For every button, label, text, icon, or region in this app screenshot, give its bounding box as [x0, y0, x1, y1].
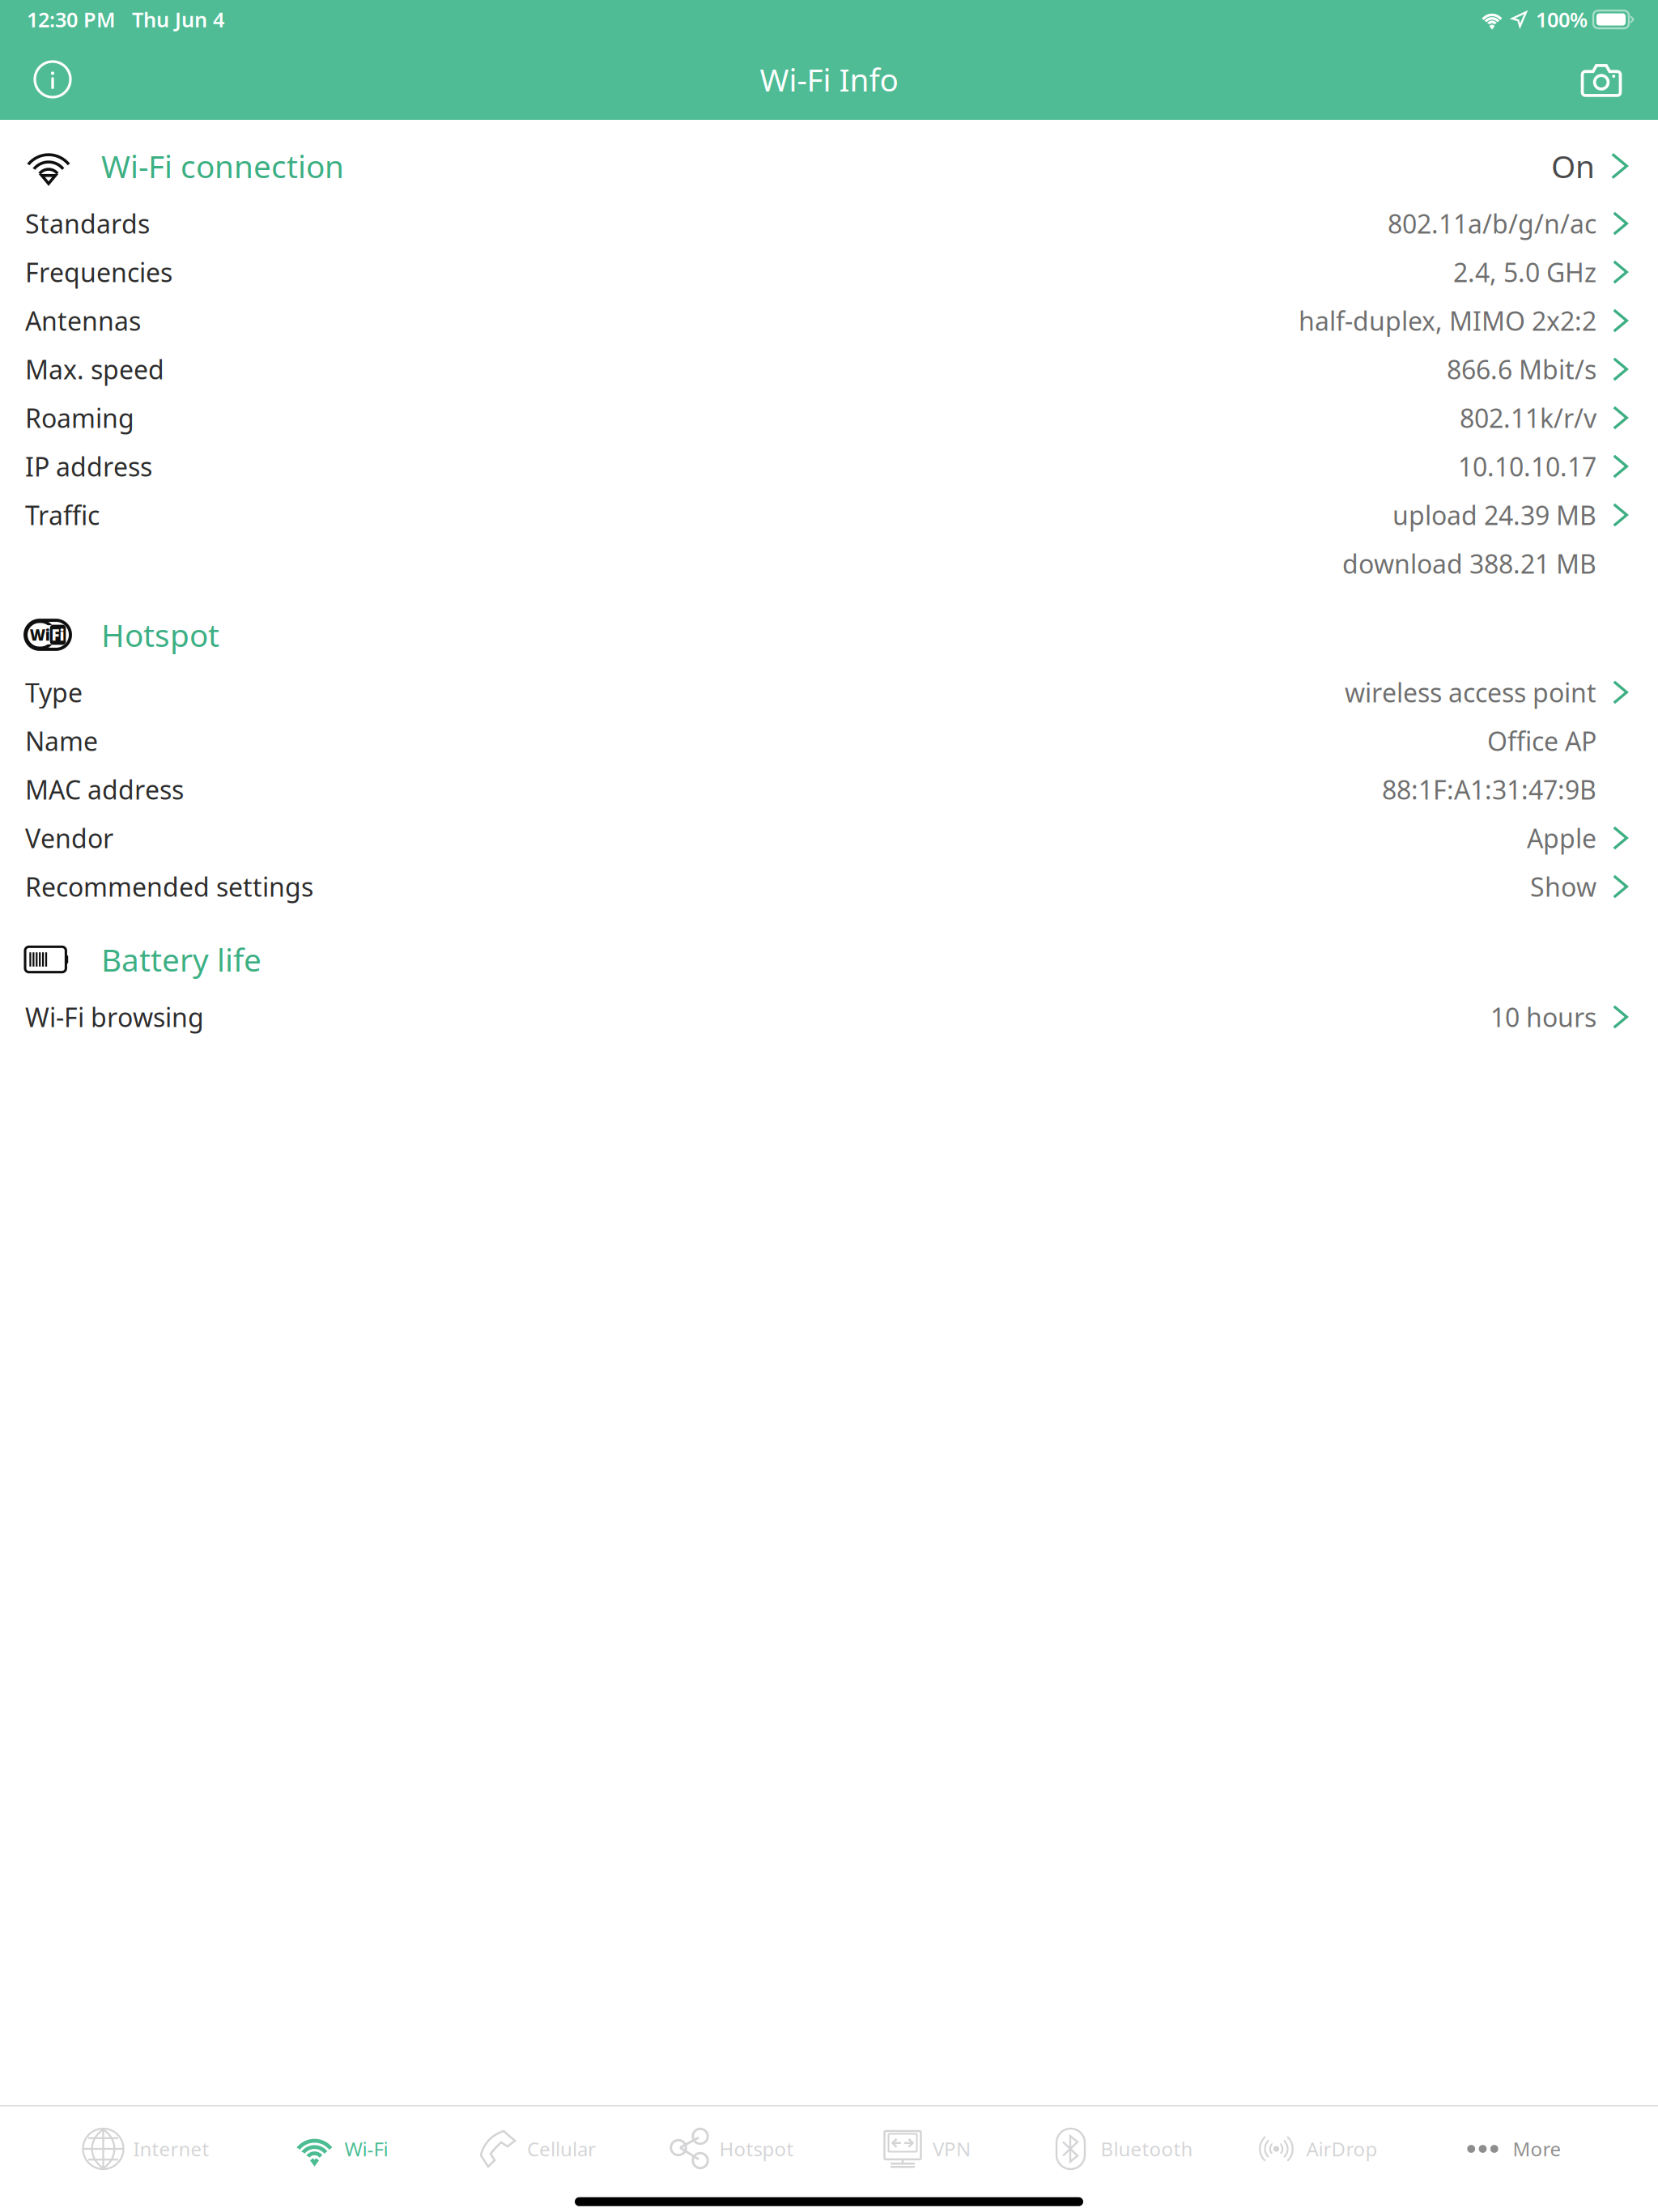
button[interactable]: Hotspot — [634, 2106, 829, 2191]
button[interactable]: VPN — [829, 2106, 1024, 2191]
staticText: Hotspot — [101, 614, 219, 656]
button[interactable]: Roaming — [0, 393, 1658, 442]
staticText: Frequencies — [25, 255, 172, 289]
button[interactable]: Antennas — [0, 296, 1658, 345]
staticText: 88:1F:A1:31:47:9B — [1382, 772, 1596, 807]
staticText: MAC address — [25, 772, 184, 807]
button[interactable]: More — [1414, 2106, 1609, 2191]
staticText: On — [1551, 145, 1595, 187]
staticText: Cellular — [527, 2136, 596, 2162]
staticText: AirDrop — [1306, 2136, 1377, 2162]
button[interactable]: Cellular — [439, 2106, 634, 2191]
staticText: Name — [25, 724, 98, 758]
button[interactable]: MAC address — [0, 765, 1658, 814]
staticText: 802.11a/b/g/n/ac — [1388, 206, 1596, 241]
button[interactable]: Max. speed — [0, 345, 1658, 393]
button[interactable]: Recommended settings — [0, 862, 1658, 911]
staticText: Wi — [30, 625, 50, 645]
staticText: Traffic — [25, 498, 100, 532]
staticText: 10.10.10.17 — [1458, 449, 1596, 484]
staticText: Battery life — [101, 939, 261, 980]
staticText: Type — [25, 675, 83, 710]
staticText: 866.6 Mbit/s — [1447, 352, 1596, 386]
staticText: Fi — [51, 625, 64, 645]
button[interactable]: Vendor — [0, 814, 1658, 862]
button[interactable]: AirDrop — [1219, 2106, 1414, 2191]
staticText: Max. speed — [25, 352, 164, 386]
button[interactable]: Traffic — [0, 491, 1658, 588]
staticText: upload 24.39 MB — [1392, 498, 1596, 532]
staticText: Office AP — [1487, 724, 1596, 758]
staticText: Recommended settings — [25, 869, 313, 904]
staticText: Wi-Fi Info — [760, 59, 898, 100]
button[interactable]: IP address — [0, 442, 1658, 491]
button[interactable]: Wi-Fi — [244, 2106, 439, 2191]
staticText: 10 hours — [1490, 1000, 1596, 1034]
staticText: VPN — [933, 2136, 971, 2162]
button[interactable]: Type — [0, 668, 1658, 717]
staticText: half-duplex, MIMO 2x2:2 — [1299, 303, 1596, 338]
button[interactable]: Bluetooth — [1024, 2106, 1219, 2191]
staticText: Internet — [133, 2136, 209, 2162]
button[interactable]: Standards — [0, 199, 1658, 248]
staticText: More — [1513, 2136, 1561, 2162]
button[interactable]: Internet — [49, 2106, 244, 2191]
staticText: 12:30 PM — [27, 6, 116, 33]
button[interactable]: Camera — [1556, 39, 1647, 120]
button[interactable]: Info — [7, 39, 98, 120]
staticText: IP address — [25, 449, 152, 484]
staticText: Antennas — [25, 303, 141, 338]
staticText: 2.4, 5.0 GHz — [1453, 255, 1596, 289]
staticText: 802.11k/r/v — [1460, 401, 1596, 435]
staticText: Show — [1530, 869, 1596, 904]
staticText: Wi-Fi connection — [101, 145, 344, 187]
button[interactable]: Wi-Fi browsing — [0, 993, 1658, 1041]
staticText: wireless access point — [1345, 675, 1596, 710]
staticText: Standards — [25, 206, 150, 241]
staticText: Wi-Fi — [344, 2136, 388, 2162]
staticText: 100% — [1536, 6, 1588, 33]
staticText: Hotspot — [719, 2136, 794, 2162]
staticText: Thu Jun 4 — [132, 6, 224, 33]
staticText: Apple — [1527, 821, 1596, 855]
staticText: Bluetooth — [1101, 2136, 1193, 2162]
button[interactable]: Name — [0, 717, 1658, 765]
staticText: Vendor — [25, 821, 113, 855]
staticText: download 388.21 MB — [1342, 546, 1596, 581]
staticText: Wi-Fi browsing — [25, 1000, 204, 1034]
staticText: Roaming — [25, 401, 134, 435]
button[interactable]: Frequencies — [0, 248, 1658, 296]
